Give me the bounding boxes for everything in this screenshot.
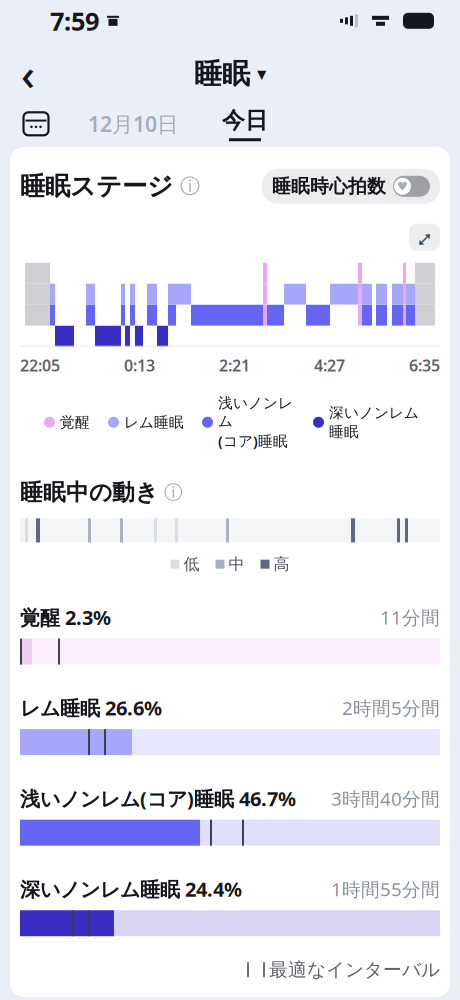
- staticText: 中: [228, 554, 244, 574]
- staticText: ⓘ: [180, 174, 200, 199]
- button[interactable]: 今日: [216, 103, 274, 145]
- button[interactable]: 睡眠: [182, 51, 278, 97]
- staticText: 2時間5分間: [342, 695, 440, 720]
- staticText: 1時間55分間: [331, 877, 440, 901]
- staticText: (コア)睡眠: [218, 431, 288, 450]
- staticText: 覚醒: [60, 413, 90, 431]
- button[interactable]: グラフを拡大: [409, 224, 440, 251]
- staticText: レム睡眠: [124, 413, 184, 431]
- staticText: レム睡眠 26.6%: [20, 695, 162, 721]
- button[interactable]: 12月10日: [82, 106, 184, 142]
- staticText: 覚醒 2.3%: [20, 604, 111, 631]
- staticText: 0:13: [124, 355, 155, 376]
- staticText: 12月10日: [88, 110, 178, 138]
- staticText: 浅いノンレム: [218, 394, 293, 430]
- staticText: 睡眠: [194, 57, 250, 91]
- staticText: 睡眠ステージ: [20, 171, 173, 202]
- staticText: 11分間: [380, 605, 440, 630]
- staticText: 深いノンレム睡眠 24.4%: [20, 876, 242, 902]
- staticText: 低: [183, 554, 199, 574]
- staticText: ▾: [257, 63, 266, 84]
- staticText: 睡眠中の動き: [20, 478, 158, 506]
- staticText: 3時間40分間: [331, 786, 440, 811]
- staticText: 浅いノンレム(コア)睡眠 46.7%: [20, 785, 296, 812]
- button[interactable]: 戻る: [0, 51, 56, 97]
- staticText: 最適なインターバル: [269, 958, 440, 981]
- staticText: 今日: [222, 106, 268, 134]
- staticText: ⤢: [416, 216, 432, 258]
- staticText: 睡眠: [329, 423, 359, 441]
- button[interactable]: 睡眠時心拍数: [262, 169, 440, 204]
- staticText: 22:05: [20, 355, 60, 376]
- staticText: 高: [273, 554, 289, 574]
- staticText: 睡眠時心拍数: [272, 175, 386, 198]
- staticText: 4:27: [314, 355, 345, 376]
- staticText: ⓘ: [164, 481, 183, 504]
- staticText: 6:35: [409, 355, 440, 376]
- staticText: 7:59: [50, 4, 99, 38]
- staticText: ‹: [21, 45, 35, 102]
- button[interactable]: カレンダー: [18, 106, 54, 142]
- staticText: 深いノンレム: [329, 404, 419, 422]
- staticText: 2:21: [219, 355, 250, 376]
- staticText: ♥: [397, 179, 408, 193]
